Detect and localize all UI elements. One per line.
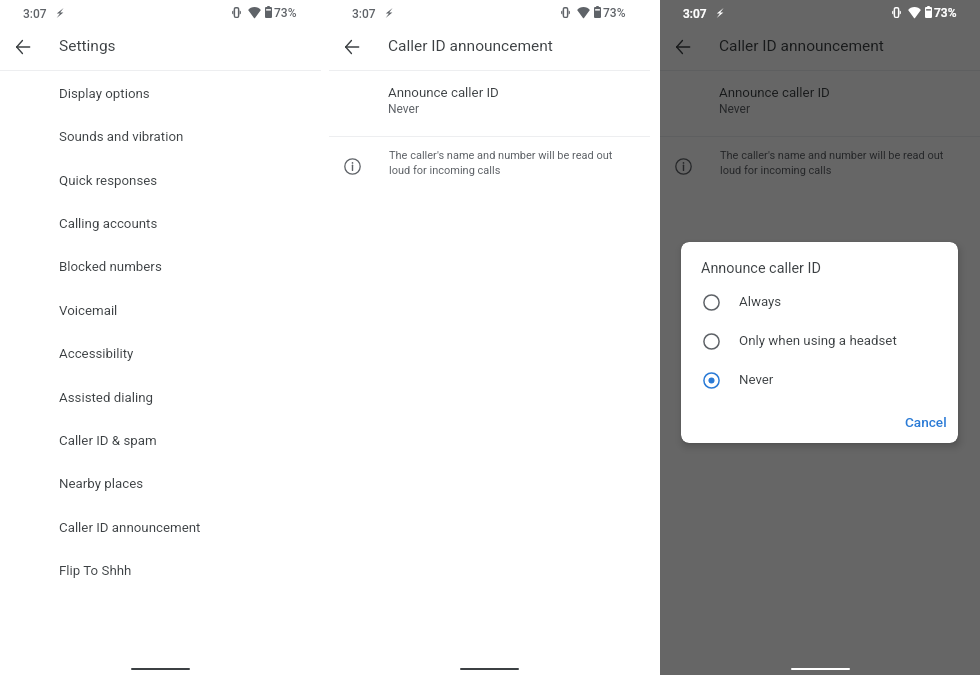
staticText: Always	[739, 294, 782, 310]
staticText: Caller ID announcement	[388, 37, 553, 55]
button[interactable]: Sounds and vibration	[0, 115, 321, 158]
staticText: 3:07	[352, 7, 376, 21]
staticText: Only when using a headset	[739, 333, 897, 349]
button[interactable]: Back	[338, 33, 366, 61]
staticText: Caller ID announcement	[59, 520, 201, 536]
staticText: Display options	[59, 86, 150, 102]
staticText: The caller's name and number will be rea…	[389, 149, 629, 176]
staticText: Caller ID & spam	[59, 433, 157, 449]
staticText: Never	[739, 372, 774, 388]
button[interactable]: Caller ID & spam	[0, 419, 321, 462]
button[interactable]: Calling accounts	[0, 202, 321, 245]
staticText: Blocked numbers	[59, 259, 162, 275]
button[interactable]: Cancel	[897, 408, 955, 436]
staticText: 3:07	[23, 7, 47, 21]
button[interactable]: Caller ID announcement	[0, 506, 321, 549]
staticText: 73%	[934, 6, 957, 20]
staticText: Announce caller ID	[388, 85, 499, 101]
button[interactable]: Flip To Shhh	[0, 549, 321, 592]
button[interactable]: Always	[681, 282, 958, 321]
button[interactable]: Never	[681, 360, 958, 399]
button[interactable]: Quick responses	[0, 159, 321, 202]
staticText: The caller's name and number will be rea…	[720, 149, 960, 176]
staticText: Accessibility	[59, 346, 134, 362]
staticText: Sounds and vibration	[59, 129, 184, 145]
button[interactable]: Only when using a headset	[681, 321, 958, 360]
staticText: Voicemail	[59, 303, 118, 319]
staticText: Settings	[59, 37, 116, 55]
staticText: Announce caller ID	[701, 260, 821, 277]
staticText: Calling accounts	[59, 216, 158, 232]
button[interactable]: Back	[9, 33, 37, 61]
staticText: 3:07	[683, 7, 707, 21]
button[interactable]: Announce caller ID	[329, 71, 650, 136]
button[interactable]: Display options	[0, 72, 321, 115]
button[interactable]: Assisted dialing	[0, 376, 321, 419]
staticText: 73%	[274, 6, 297, 20]
button[interactable]: Voicemail	[0, 289, 321, 332]
staticText: Never	[719, 102, 751, 116]
staticText: Caller ID announcement	[719, 37, 884, 55]
staticText: Assisted dialing	[59, 390, 153, 406]
staticText: Never	[388, 102, 420, 116]
staticText: Cancel	[905, 414, 947, 430]
staticText: 73%	[603, 6, 626, 20]
staticText: Nearby places	[59, 476, 144, 492]
staticText: Announce caller ID	[719, 85, 830, 101]
button[interactable]: Announce caller ID	[660, 71, 980, 136]
button[interactable]: Accessibility	[0, 332, 321, 375]
button[interactable]: Back	[669, 33, 697, 61]
staticText: Flip To Shhh	[59, 563, 132, 579]
button[interactable]: Nearby places	[0, 462, 321, 505]
button[interactable]: Blocked numbers	[0, 245, 321, 288]
staticText: Quick responses	[59, 173, 158, 189]
